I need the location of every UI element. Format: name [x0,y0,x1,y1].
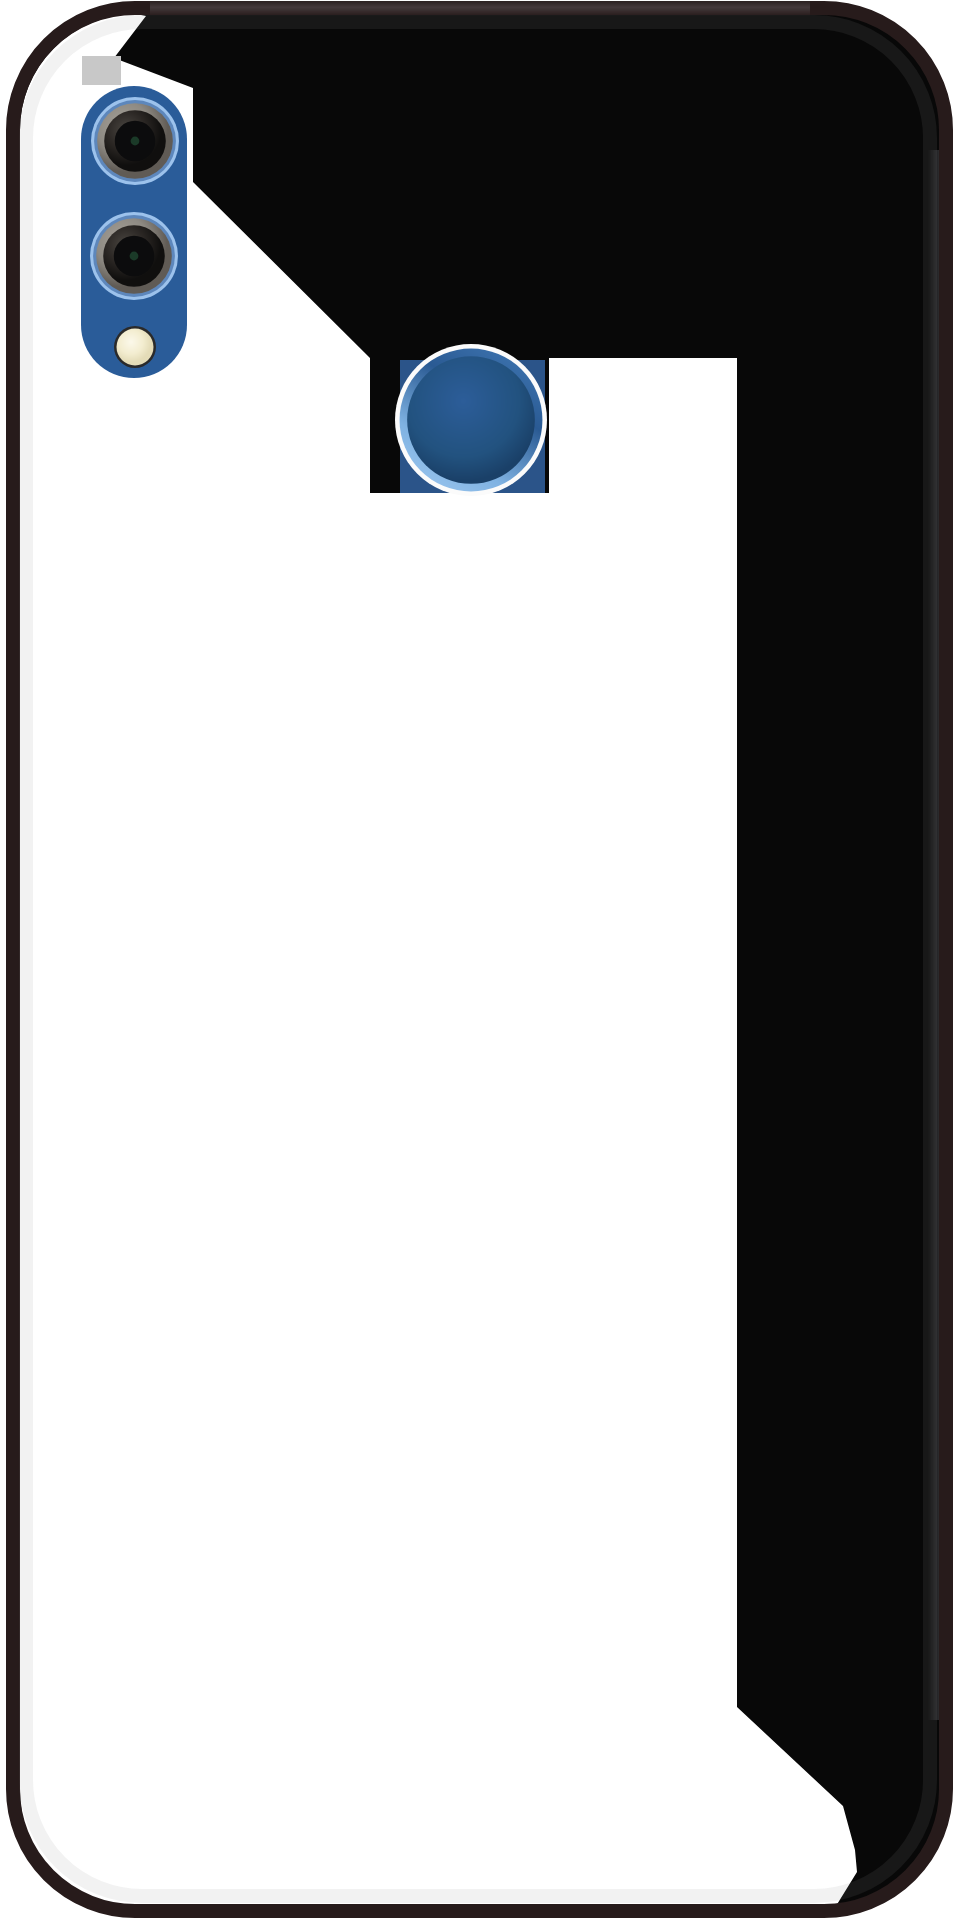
button[interactable]: Phone back cover [0,0,954,1920]
